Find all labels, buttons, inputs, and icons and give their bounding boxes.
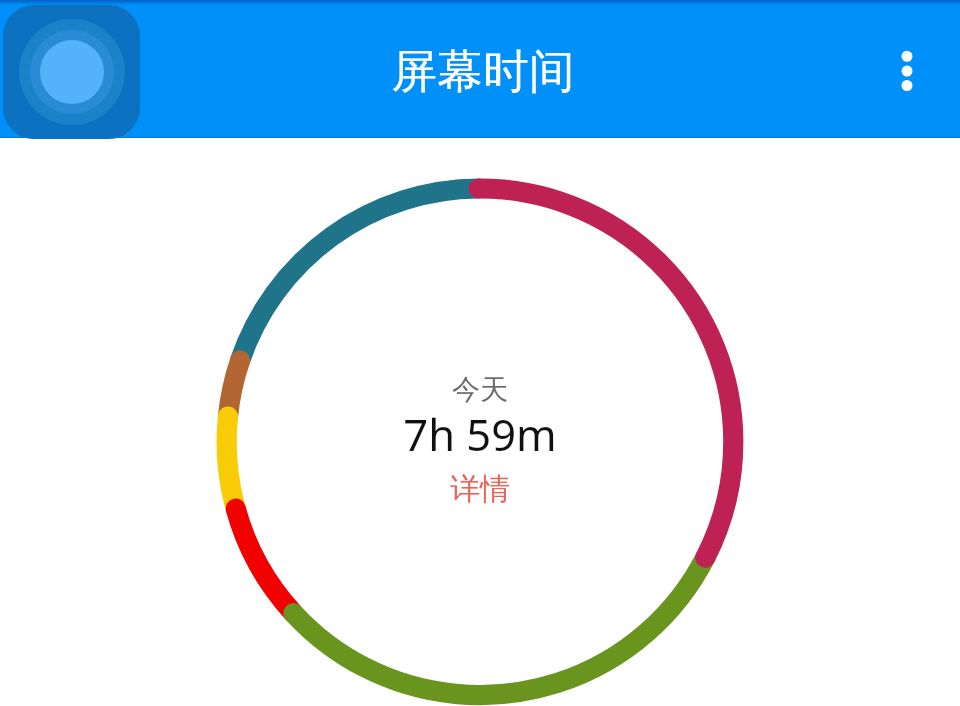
button[interactable]: Screen time app icon	[3, 5, 140, 139]
staticText: 详情	[450, 470, 510, 506]
staticText: 屏幕时间	[3, 43, 960, 101]
staticText: 7h 59m	[403, 404, 557, 460]
button[interactable]: 详情	[442, 466, 518, 510]
staticText: 今天	[452, 372, 508, 407]
button[interactable]: More options	[877, 41, 937, 101]
